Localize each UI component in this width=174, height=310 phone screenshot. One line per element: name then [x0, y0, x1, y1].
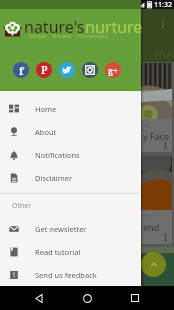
button[interactable]: Get newsletter [0, 217, 141, 240]
button[interactable]: Pinterest [36, 62, 52, 78]
staticText: Disclaimer [35, 173, 73, 183]
staticText: Send us feedback [35, 270, 97, 280]
button[interactable]: Read tutorial [0, 240, 141, 263]
staticText: Read tutorial [35, 247, 81, 257]
staticText: P [41, 63, 48, 77]
staticText: Get newsletter [35, 224, 87, 234]
button[interactable]: Send us feedback [0, 263, 141, 286]
staticText: re [143, 121, 150, 131]
button[interactable]: Instagram [82, 62, 98, 78]
staticText: nature's [24, 16, 85, 38]
button[interactable]: Google Plus [105, 62, 121, 78]
button[interactable]: Card options [160, 232, 170, 242]
staticText: HEALTHY [155, 48, 174, 60]
staticText: nurture [85, 16, 143, 38]
button[interactable]: Home [78, 286, 96, 310]
button[interactable]: More options [156, 17, 169, 30]
staticText: Simple Natural Homemade [29, 32, 108, 39]
button[interactable]: About [0, 120, 141, 143]
button[interactable]: for [2, 156, 172, 244]
button[interactable]: Facebook [13, 62, 29, 78]
staticText: Home [35, 104, 57, 114]
staticText: f [19, 63, 24, 78]
button[interactable]: Notifications [0, 143, 141, 166]
staticText: Notifications [35, 150, 80, 160]
staticText: About [35, 127, 57, 137]
staticText: y Face [143, 130, 170, 142]
staticText: for [143, 212, 153, 222]
staticText: Other [12, 201, 32, 211]
button[interactable]: Home [0, 97, 141, 120]
button[interactable]: Disclaimer [0, 166, 141, 189]
staticText: g+ [108, 64, 119, 76]
staticText: 11:32 [154, 0, 172, 9]
button[interactable]: Card options [160, 140, 170, 150]
button[interactable]: re [2, 63, 172, 152]
button[interactable]: Scroll to top [141, 252, 166, 277]
staticText: end [143, 221, 160, 233]
button[interactable]: Twitter [59, 62, 75, 78]
button[interactable]: Recent apps [126, 286, 144, 310]
button[interactable]: Back [30, 286, 48, 310]
